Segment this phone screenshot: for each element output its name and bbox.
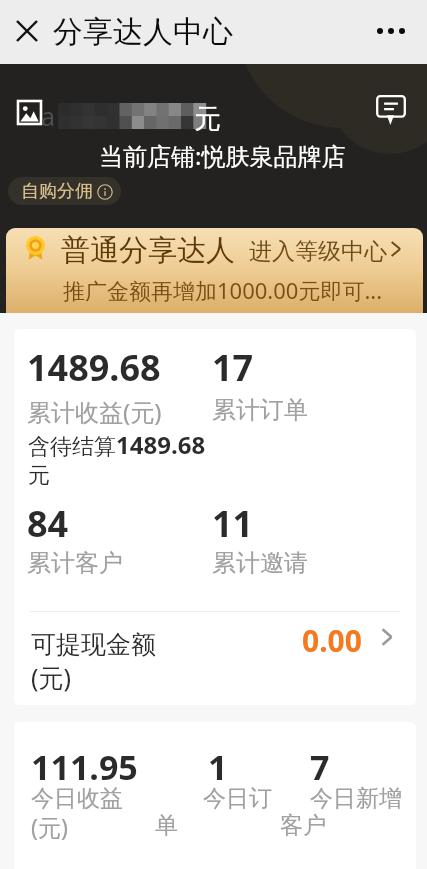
staticText: (元) [31, 811, 68, 842]
button[interactable]: 自购分佣 [8, 177, 121, 205]
staticText: 1489.68 [27, 343, 161, 392]
staticText: 进入等级中心 [249, 237, 387, 266]
staticText: 111.95 [31, 744, 138, 790]
staticText: 含待结算1489.68元 [28, 428, 213, 489]
staticText: 84 [27, 499, 69, 548]
button[interactable]: Close [5, 9, 48, 52]
button[interactable]: Messages [369, 88, 413, 132]
staticText: 1 [208, 744, 228, 790]
staticText: 分享达人中心 [53, 13, 233, 51]
staticText: a [41, 99, 56, 133]
staticText: 17 [212, 343, 254, 392]
staticText: 推广金额再增加1000.00元即可... [63, 275, 383, 305]
staticText: 累计收益(元) [27, 395, 162, 428]
staticText: 累计邀请 [212, 548, 308, 578]
button[interactable]: 可提现金额 (元) [14, 611, 416, 705]
staticText: 可提现金额 (元) [31, 629, 156, 694]
staticText: 单 [155, 811, 178, 840]
staticText: 客户 [280, 811, 326, 840]
staticText: 普通分享达人 [61, 232, 235, 269]
button[interactable]: More options [369, 9, 413, 53]
staticText: 当前店铺:悦肤泉品牌店 [99, 139, 346, 172]
staticText: 11 [212, 499, 254, 548]
staticText: 今日收益 [31, 784, 123, 813]
staticText: 自购分佣 [21, 180, 93, 203]
staticText: 今日订 [203, 784, 272, 813]
staticText: 0.00 [302, 620, 362, 661]
staticText: 元 [194, 102, 221, 136]
staticText: 累计客户 [27, 548, 123, 578]
staticText: 今日新增 [310, 784, 402, 813]
button[interactable]: 普通分享达人 [6, 228, 423, 313]
staticText: 累计订单 [212, 395, 308, 425]
staticText: 7 [310, 744, 330, 790]
